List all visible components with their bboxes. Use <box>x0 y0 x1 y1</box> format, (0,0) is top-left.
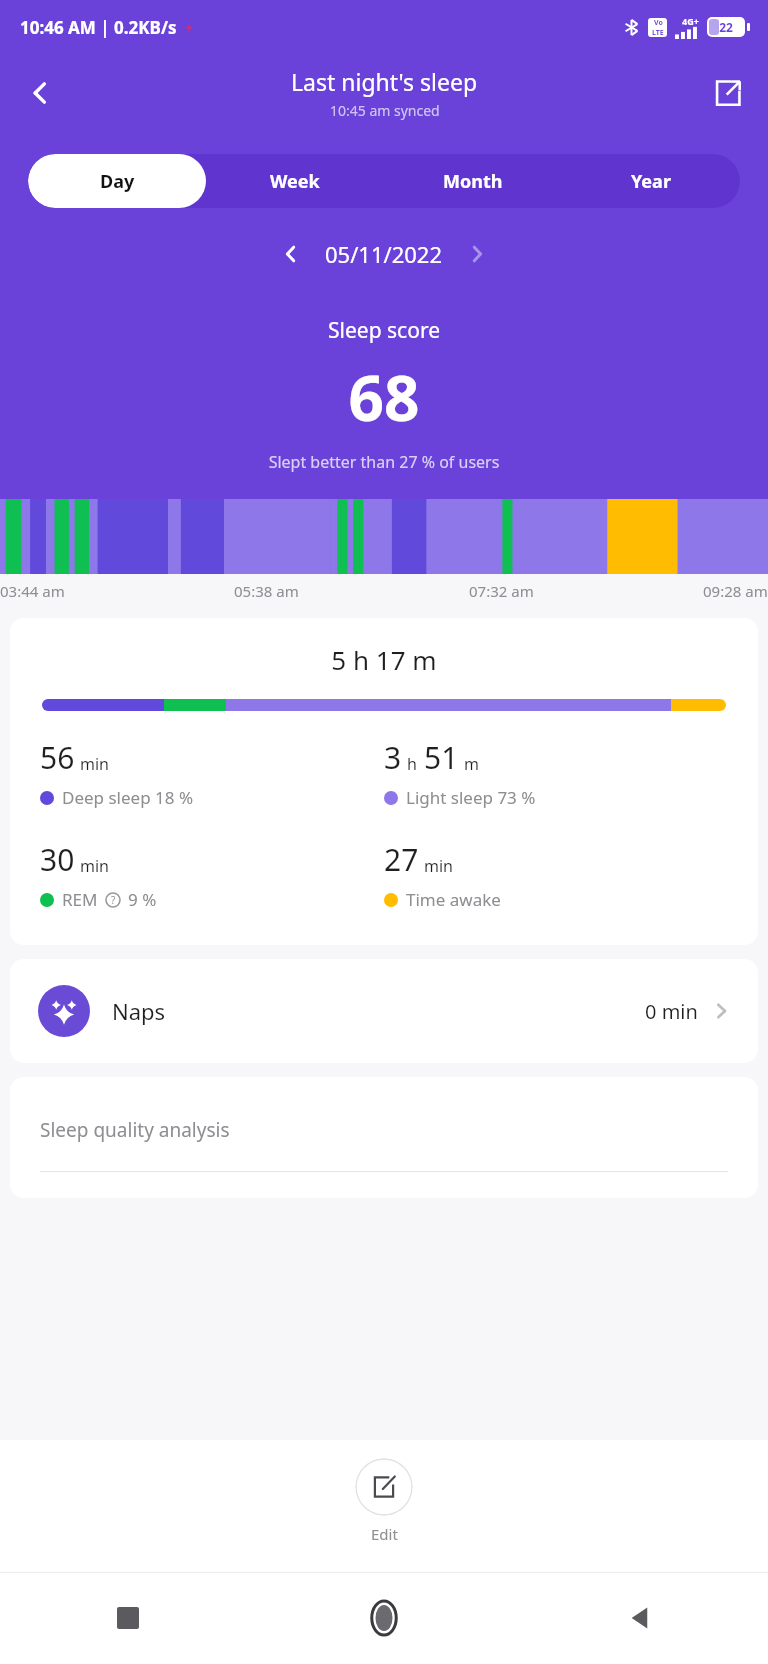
button[interactable]: Naps <box>10 959 758 1063</box>
staticText: Sleep score <box>0 316 768 345</box>
staticText: min <box>80 855 109 877</box>
staticText: Day <box>100 169 135 194</box>
button[interactable]: Sleep quality analysis <box>10 1077 758 1198</box>
staticText: 0 min <box>645 998 698 1025</box>
staticText: min <box>424 855 453 877</box>
staticText: 30 <box>40 839 75 880</box>
button[interactable]: Recents <box>0 1572 256 1664</box>
staticText: Light sleep 73 % <box>406 786 536 809</box>
staticText: Naps <box>112 996 166 1026</box>
staticText: 05/11/2022 <box>325 239 443 269</box>
button[interactable]: Month <box>384 154 562 208</box>
staticText: Edit <box>371 1524 398 1544</box>
staticText: Last night's sleep <box>291 66 478 97</box>
staticText: LTE <box>652 28 664 37</box>
staticText: 56 <box>40 737 75 778</box>
staticText: 5 h 17 m <box>10 642 758 677</box>
staticText: 10:46 AM | 0.2KB/s <box>20 16 177 39</box>
staticText: 27 <box>384 839 419 880</box>
button[interactable]: Week <box>206 154 384 208</box>
staticText: Year <box>631 169 671 194</box>
staticText: 3 <box>384 737 402 778</box>
staticText: 68 <box>0 355 768 439</box>
button[interactable]: Edit <box>355 1458 413 1544</box>
staticText: 51 <box>424 737 459 778</box>
staticText: 4G+ <box>682 15 699 27</box>
staticText: Sleep quality analysis <box>40 1117 230 1143</box>
button[interactable]: Day <box>28 154 206 208</box>
button[interactable]: Home <box>256 1572 512 1664</box>
staticText: Week <box>270 169 320 194</box>
button[interactable]: Share <box>702 67 754 119</box>
button[interactable]: Previous day <box>269 232 313 276</box>
staticText: Time awake <box>406 888 501 911</box>
staticText: 09:28 am <box>703 581 768 601</box>
button[interactable]: About REM sleep <box>104 891 122 909</box>
button[interactable]: Next day <box>455 232 499 276</box>
staticText: min <box>80 753 109 775</box>
staticText: ? <box>111 893 116 907</box>
staticText: 03:44 am <box>0 581 65 601</box>
staticText: 10:45 am synced <box>330 101 440 120</box>
staticText: REM <box>62 888 98 911</box>
staticText: Slept better than 27 % of users <box>0 451 768 473</box>
staticText: m <box>464 753 479 775</box>
staticText: Month <box>443 169 503 194</box>
staticText: Deep sleep 18 % <box>62 786 194 809</box>
staticText: h <box>407 753 417 775</box>
staticText: Vo <box>654 18 663 28</box>
staticText: 22 <box>709 19 743 35</box>
staticText: 9 % <box>128 888 157 911</box>
button[interactable]: Year <box>562 154 740 208</box>
staticText: 05:38 am <box>234 581 299 601</box>
staticText: 07:32 am <box>469 581 534 601</box>
button[interactable]: Back <box>12 65 68 121</box>
button[interactable]: Back <box>512 1572 768 1664</box>
